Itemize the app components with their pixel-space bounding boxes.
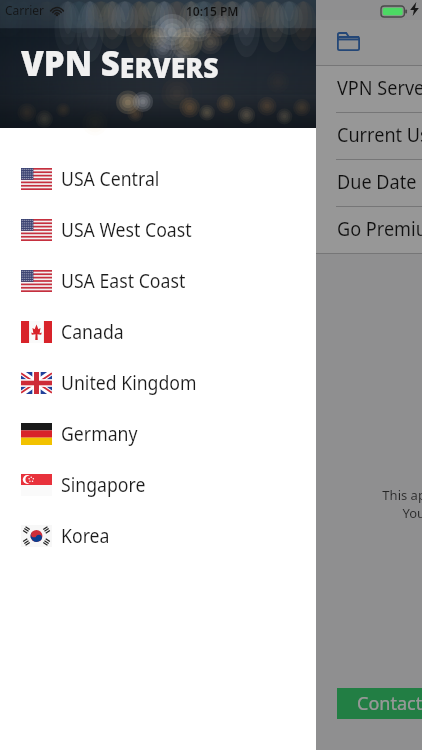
staticText: 10:15 PM: [186, 3, 239, 19]
staticText: VPN Servers: [337, 74, 422, 101]
button[interactable]: Canada: [0, 306, 316, 357]
button[interactable]: VPN Servers: [316, 66, 422, 112]
button[interactable]: Due Date: [316, 160, 422, 206]
button[interactable]: USA East Coast: [0, 255, 316, 306]
button[interactable]: Go Premium: [316, 207, 422, 253]
button[interactable]: United Kingdom: [0, 357, 316, 408]
staticText: ERVERS: [120, 47, 219, 86]
button[interactable]: USA West Coast: [0, 204, 316, 255]
button[interactable]: Singapore: [0, 459, 316, 510]
staticText: Canada: [61, 319, 124, 345]
staticText: Current Usage: [337, 121, 422, 148]
staticText: Germany: [61, 421, 138, 447]
button[interactable]: Germany: [0, 408, 316, 459]
staticText: USA East Coast: [61, 268, 186, 294]
staticText: United Kingdom: [61, 370, 197, 396]
staticText: Contact Us: [357, 691, 422, 716]
button[interactable]: Menu: [333, 28, 363, 54]
staticText: VPN S: [21, 38, 120, 87]
button[interactable]: Current Usage: [316, 113, 422, 159]
staticText: Singapore: [61, 472, 146, 498]
staticText: Go Premium: [337, 215, 422, 242]
staticText: Carrier: [5, 2, 45, 18]
button[interactable]: Contact Us: [337, 688, 422, 719]
staticText: USA Central: [61, 166, 160, 192]
button[interactable]: Korea: [0, 510, 316, 561]
staticText: This application configures the iOS syst…: [382, 486, 422, 522]
staticText: Due Date: [337, 168, 417, 195]
staticText: Korea: [61, 523, 110, 549]
button[interactable]: USA Central: [0, 153, 316, 204]
staticText: USA West Coast: [61, 217, 192, 243]
